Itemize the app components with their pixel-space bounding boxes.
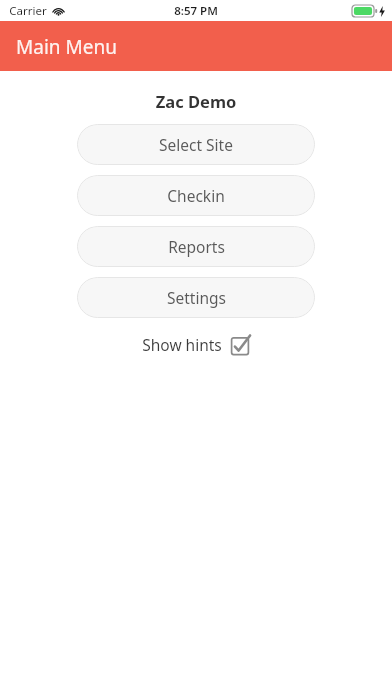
button[interactable]: Select Site (77, 124, 315, 165)
button[interactable]: Checkin (77, 175, 315, 216)
staticText: 8:57 PM (174, 3, 218, 19)
staticText: Show hints (142, 334, 222, 355)
staticText: Carrier (9, 3, 47, 19)
other: Show hints checkbox, checked (231, 335, 251, 355)
button[interactable]: Show hints (138, 332, 255, 357)
staticText: Main Menu (16, 34, 117, 60)
staticText: Zac Demo (0, 90, 392, 112)
staticText: Select Site (159, 134, 233, 155)
staticText: Reports (168, 236, 225, 257)
button[interactable]: Settings (77, 277, 315, 318)
staticText: Checkin (167, 185, 225, 206)
button[interactable]: Reports (77, 226, 315, 267)
staticText: Settings (167, 287, 226, 308)
